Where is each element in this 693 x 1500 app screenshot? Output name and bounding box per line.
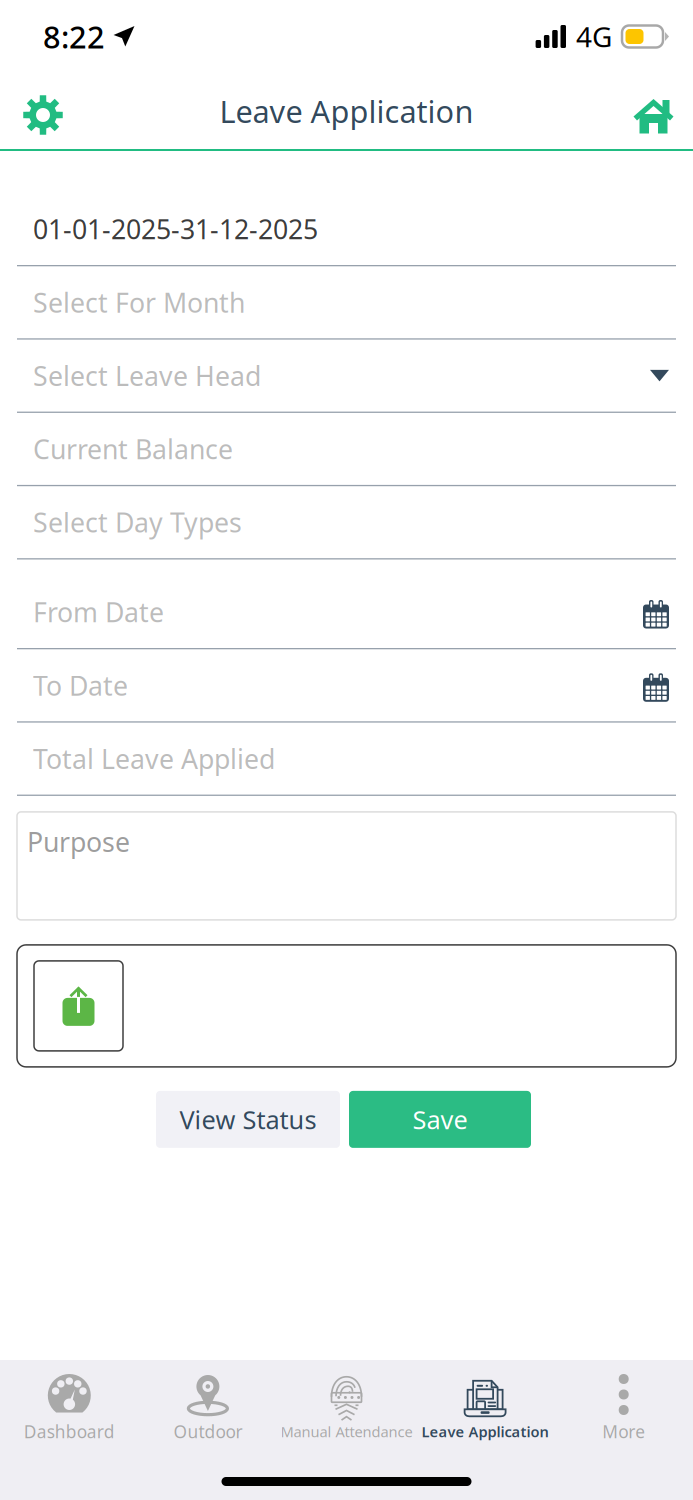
- button[interactable]: View Status: [156, 1091, 340, 1148]
- staticText: Leave Application: [422, 1422, 549, 1441]
- button[interactable]: Purpose: [0, 812, 693, 920]
- button[interactable]: Current Balance: [0, 413, 693, 486]
- staticText: 01-01-2025-31-12-2025: [33, 211, 318, 247]
- staticText: Select Leave Head: [33, 358, 261, 393]
- button[interactable]: Save: [349, 1091, 531, 1148]
- staticText: Select For Month: [33, 285, 245, 320]
- button[interactable]: Outdoor: [139, 1360, 277, 1447]
- staticText: To Date: [33, 668, 128, 703]
- button[interactable]: Select For Month: [0, 266, 693, 340]
- button[interactable]: Select Day Types: [0, 486, 693, 559]
- button[interactable]: Dashboard: [0, 1360, 139, 1447]
- staticText: 4G: [576, 18, 612, 55]
- staticText: Select Day Types: [33, 504, 242, 540]
- staticText: Outdoor: [173, 1420, 242, 1443]
- button[interactable]: More: [554, 1360, 693, 1447]
- staticText: More: [602, 1420, 645, 1443]
- staticText: Leave Application: [219, 91, 473, 131]
- staticText: Current Balance: [33, 431, 233, 467]
- button[interactable]: Leave Application: [416, 1362, 554, 1445]
- button[interactable]: Home: [613, 76, 693, 145]
- staticText: Purpose: [27, 824, 130, 859]
- staticText: View Status: [179, 1103, 316, 1136]
- staticText: From Date: [33, 594, 164, 630]
- staticText: Total Leave Applied: [33, 741, 275, 776]
- button[interactable]: Select Leave Head: [0, 340, 693, 413]
- staticText: Manual Attendance: [280, 1422, 412, 1441]
- staticText: Dashboard: [24, 1420, 115, 1443]
- staticText: Save: [412, 1103, 467, 1136]
- button[interactable]: Upload attachment: [34, 961, 123, 1051]
- button[interactable]: Total Leave Applied: [0, 723, 693, 796]
- button[interactable]: To Date: [0, 649, 693, 723]
- button[interactable]: Manual Attendance: [277, 1362, 416, 1445]
- button[interactable]: From Date: [0, 576, 693, 649]
- button[interactable]: Settings: [0, 77, 83, 145]
- staticText: 8:22: [43, 16, 105, 57]
- button[interactable]: 01-01-2025-31-12-2025: [0, 193, 693, 266]
